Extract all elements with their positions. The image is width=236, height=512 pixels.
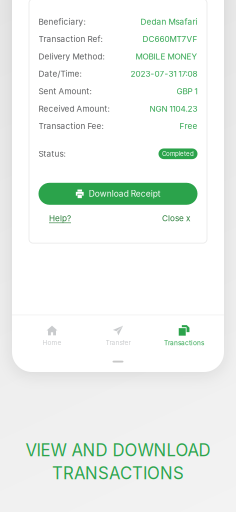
staticText: NGN 1104.23 <box>149 104 197 114</box>
staticText: GBP 1 <box>176 86 197 96</box>
staticText: Sent Amount: <box>38 86 91 96</box>
staticText: TRANSACTIONS <box>52 463 184 483</box>
staticText: Status: <box>38 149 65 159</box>
staticText: Beneficiary: <box>38 17 85 27</box>
button[interactable]: Transfer <box>85 325 151 346</box>
staticText: MOBILE MONEY <box>135 52 197 61</box>
staticText: Home <box>42 339 61 346</box>
staticText: Free <box>179 121 197 131</box>
staticText: 2023-07-31 17:08 <box>130 69 197 79</box>
staticText: Transactions <box>164 339 204 347</box>
staticText: Help? <box>49 213 71 223</box>
button[interactable]: Download Receipt <box>38 183 197 205</box>
button[interactable]: Transactions <box>151 325 217 347</box>
staticText: Transaction Fee: <box>38 121 103 131</box>
staticText: Date/Time: <box>38 69 81 79</box>
staticText: Received Amount: <box>38 104 109 114</box>
staticText: Dedan Msafari <box>140 17 197 27</box>
staticText: Delivery Method: <box>38 52 104 61</box>
button[interactable]: Help? <box>49 213 71 223</box>
staticText: Completed <box>162 150 194 157</box>
button[interactable]: Home <box>19 325 85 346</box>
staticText: Close x <box>162 213 190 223</box>
staticText: VIEW AND DOWNLOAD <box>25 440 210 460</box>
staticText: Download Receipt <box>89 189 161 199</box>
button[interactable]: Close x <box>162 213 190 223</box>
staticText: DC660MT7VF <box>142 34 197 44</box>
staticText: Transaction Ref: <box>38 34 102 44</box>
staticText: Transfer <box>105 339 130 346</box>
